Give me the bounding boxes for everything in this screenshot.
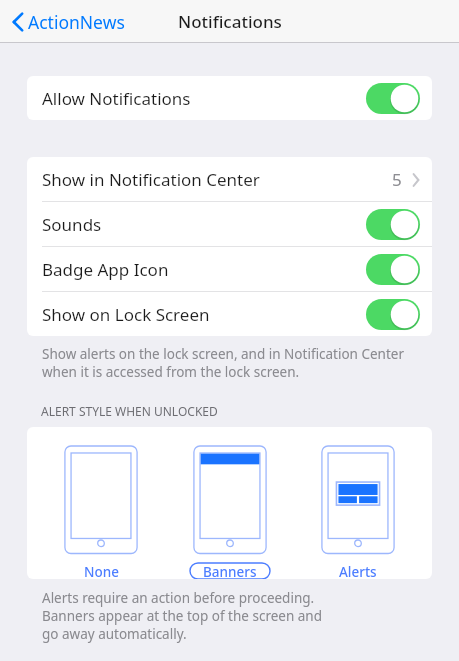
button[interactable]: Switch on [366, 83, 420, 114]
button[interactable]: Show on Lock Screen [27, 292, 432, 336]
button[interactable]: Banners [175, 427, 285, 579]
staticText: None [84, 563, 119, 579]
button[interactable]: Switch on [366, 254, 420, 285]
staticText: Alerts [339, 563, 377, 579]
button[interactable]: Sounds [27, 202, 432, 246]
staticText: Sounds [42, 213, 366, 236]
staticText: Badge App Icon [42, 258, 366, 281]
staticText: 5 [392, 168, 402, 191]
button[interactable]: Badge App Icon [27, 247, 432, 291]
button[interactable]: Switch on [366, 209, 420, 240]
staticText: Notifications [178, 10, 282, 33]
staticText: Banners [203, 563, 257, 579]
button[interactable]: Back to ActionNews [8, 4, 129, 40]
button[interactable]: Show in Notification Center [27, 157, 432, 201]
staticText: Show alerts on the lock screen, and in N… [42, 345, 404, 381]
staticText: Show on Lock Screen [42, 303, 366, 326]
button[interactable]: Allow Notifications [27, 76, 432, 120]
staticText: Allow Notifications [42, 87, 366, 110]
button[interactable]: Switch on [366, 299, 420, 330]
staticText: Show in Notification Center [42, 168, 392, 191]
button[interactable]: Alerts [303, 427, 413, 579]
button[interactable]: None [46, 427, 156, 579]
staticText: Alerts require an action before proceedi… [42, 589, 323, 643]
staticText: ALERT STYLE WHEN UNLOCKED [41, 403, 218, 419]
staticText: ActionNews [28, 10, 125, 34]
